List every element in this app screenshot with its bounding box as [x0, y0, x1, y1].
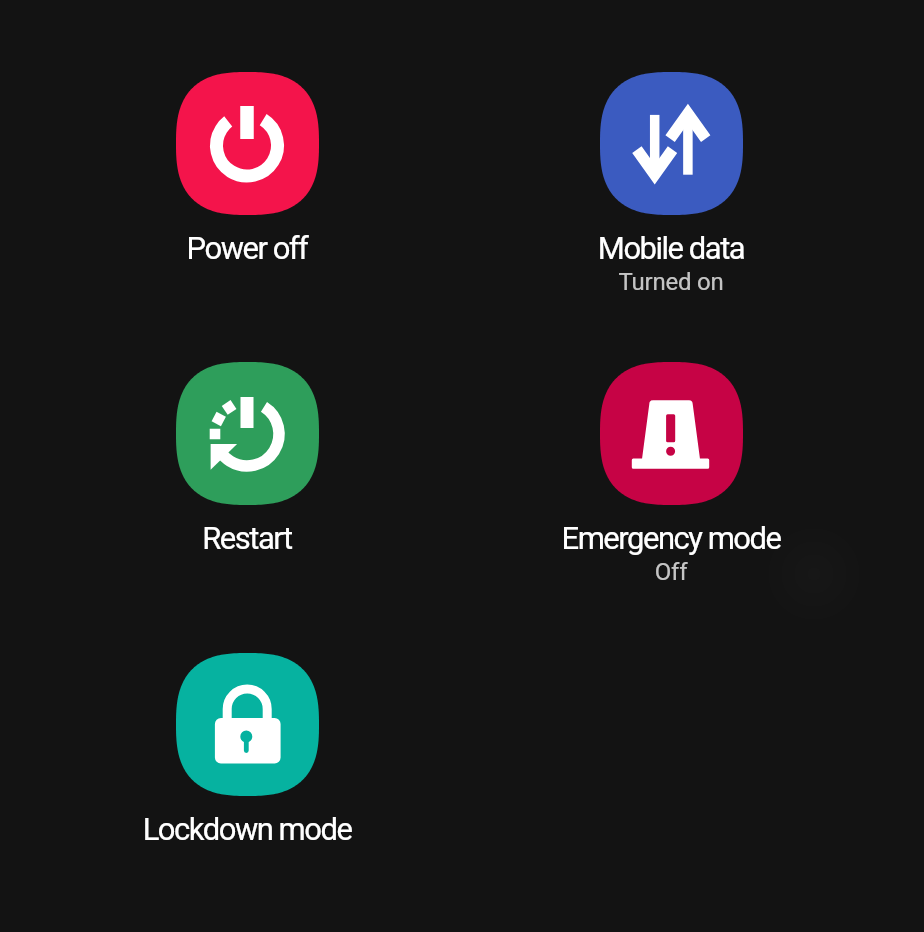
staticText: Turned on [481, 268, 861, 296]
staticText: Off [481, 558, 861, 586]
button[interactable]: Lockdown mode [57, 653, 437, 847]
button[interactable]: Emergency mode [481, 362, 861, 586]
staticText: Power off [57, 230, 437, 266]
staticText: Lockdown mode [57, 811, 437, 847]
staticText: Mobile data [481, 230, 861, 266]
staticText: Restart [57, 520, 437, 556]
button[interactable]: Power off [57, 72, 437, 266]
button[interactable]: Restart [57, 362, 437, 556]
staticText: Emergency mode [481, 520, 861, 556]
button[interactable]: Mobile data [481, 72, 861, 296]
